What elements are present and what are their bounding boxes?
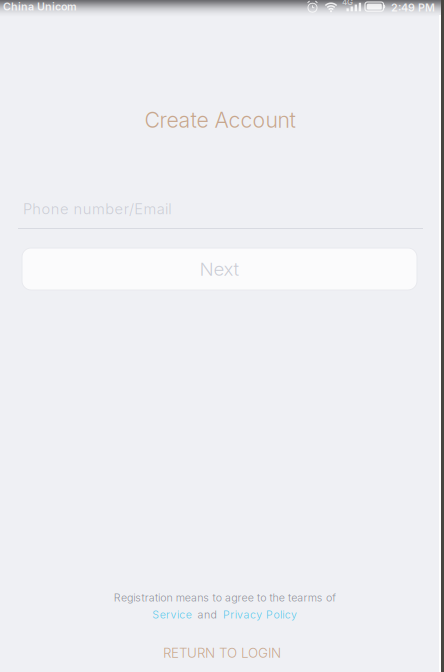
- staticText: Registration means to agree to the tearm…: [114, 591, 336, 604]
- staticText: China Unicom: [3, 0, 77, 13]
- staticText: RETURN TO LOGIN: [163, 645, 281, 661]
- staticText: 4G: [342, 0, 353, 7]
- button[interactable]: RETURN TO LOGIN: [0, 640, 444, 666]
- staticText: and: [198, 608, 216, 621]
- staticText: 2:49 PM: [391, 1, 435, 14]
- staticText: Privacy Policy: [223, 608, 297, 621]
- staticText: Create Account: [144, 107, 295, 133]
- button[interactable]: Privacy Policy: [221, 609, 299, 620]
- button[interactable]: Service: [151, 609, 193, 620]
- staticText: Next: [199, 258, 239, 280]
- staticText: Service: [152, 608, 192, 621]
- button[interactable]: Next: [22, 248, 417, 290]
- staticText: Phone number/Email: [23, 200, 171, 218]
